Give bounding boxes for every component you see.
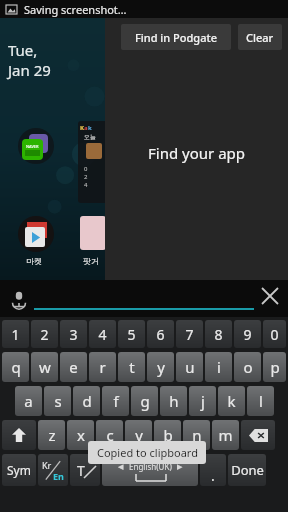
staticText: o [243, 357, 253, 377]
button[interactable]: Clear [238, 24, 282, 50]
button[interactable]: f [102, 386, 129, 416]
button[interactable]: v [125, 420, 152, 450]
staticText: 3 [69, 325, 78, 344]
staticText: 팟거 [83, 256, 99, 266]
button[interactable]: m [212, 420, 239, 450]
staticText: v [135, 425, 143, 445]
button[interactable]: p [263, 352, 286, 382]
staticText: n [192, 425, 202, 445]
staticText: c [106, 425, 114, 445]
button[interactable]: d [73, 386, 100, 416]
staticText: En [53, 470, 64, 482]
button[interactable]: Period [200, 454, 226, 486]
button[interactable]: k [218, 386, 245, 416]
staticText: 0 [270, 325, 279, 344]
staticText: 2 [40, 325, 49, 344]
button[interactable]: 8 [205, 320, 232, 348]
staticText: 5 [127, 325, 136, 344]
staticText: 2 [84, 173, 88, 181]
staticText: t [129, 357, 135, 377]
button[interactable]: o [234, 352, 261, 382]
button[interactable]: z [38, 420, 65, 450]
staticText: . [211, 466, 215, 485]
staticText: Find your app [148, 143, 246, 163]
button[interactable]: u [176, 352, 203, 382]
staticText: g [140, 391, 150, 411]
button[interactable]: Handwriting [70, 454, 100, 486]
staticText: English(UK) [129, 461, 172, 472]
staticText: 오늘 [84, 133, 96, 141]
staticText: 4 [98, 325, 107, 344]
button[interactable]: i [205, 352, 232, 382]
button[interactable]: a [15, 386, 42, 416]
button[interactable]: w [31, 352, 58, 382]
button[interactable]: 7 [176, 320, 203, 348]
button[interactable]: t [118, 352, 145, 382]
button[interactable]: r [89, 352, 116, 382]
button[interactable]: e [60, 352, 87, 382]
button[interactable]: Space [102, 454, 198, 486]
staticText: 0 [84, 165, 88, 173]
button[interactable]: y [147, 352, 174, 382]
staticText: l [259, 391, 263, 411]
button[interactable]: c [96, 420, 123, 450]
staticText: m [218, 425, 233, 445]
staticText: Jan 29 [8, 60, 51, 80]
staticText: r [99, 357, 106, 377]
button[interactable]: Backspace [241, 420, 275, 450]
staticText: k [88, 124, 92, 132]
button[interactable]: n [183, 420, 210, 450]
button[interactable]: 6 [147, 320, 174, 348]
staticText: 4 [84, 181, 88, 189]
button[interactable]: l [247, 386, 274, 416]
button[interactable]: 4 [89, 320, 116, 348]
staticText: e [69, 357, 78, 377]
button[interactable]: 2 [31, 320, 58, 348]
staticText: p [270, 357, 280, 377]
staticText: 7 [185, 325, 194, 344]
button[interactable]: 3 [60, 320, 87, 348]
button[interactable]: q [2, 352, 29, 382]
staticText: b [163, 425, 173, 445]
button[interactable]: b [154, 420, 181, 450]
button[interactable]: 9 [234, 320, 261, 348]
staticText: h [169, 391, 179, 411]
button[interactable]: Shift [2, 420, 36, 450]
staticText: Done [231, 461, 264, 479]
button[interactable]: s [44, 386, 71, 416]
staticText: Find in Podgate [135, 30, 217, 45]
staticText: T [77, 461, 85, 480]
staticText: Sym [7, 462, 31, 478]
button[interactable]: g [131, 386, 158, 416]
staticText: d [82, 391, 92, 411]
button[interactable]: Clear text [262, 288, 278, 304]
button[interactable]: Sym [2, 454, 36, 486]
staticText: K [80, 124, 84, 132]
staticText: ▶ [177, 463, 183, 471]
staticText: u [185, 357, 195, 377]
button[interactable]: 5 [118, 320, 145, 348]
staticText: 8 [214, 325, 223, 344]
button[interactable]: Find in Podgate [121, 24, 231, 50]
button[interactable]: 0 [263, 320, 286, 348]
button[interactable]: 1 [2, 320, 29, 348]
button[interactable]: Voice input [9, 289, 29, 309]
staticText: Saving screenshot… [24, 2, 127, 17]
button[interactable]: h [160, 386, 187, 416]
staticText: NAVER [26, 144, 39, 149]
button[interactable]: Language [38, 454, 68, 486]
button[interactable]: Tue, [0, 18, 105, 280]
staticText: a [84, 124, 88, 132]
staticText: Tue, [8, 40, 38, 60]
button[interactable]: Done [228, 454, 266, 486]
staticText: k [227, 391, 236, 411]
staticText: s [54, 391, 62, 411]
staticText: a [24, 391, 33, 411]
button[interactable]: j [189, 386, 216, 416]
staticText: 6 [156, 325, 165, 344]
staticText: i [217, 357, 221, 377]
staticText: ◀ [118, 463, 124, 471]
button[interactable]: x [67, 420, 94, 450]
staticText: 1 [11, 325, 20, 344]
staticText: j [201, 391, 205, 411]
